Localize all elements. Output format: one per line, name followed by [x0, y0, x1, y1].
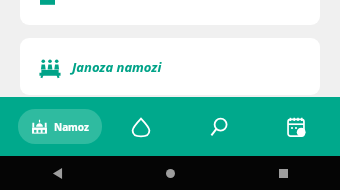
button[interactable]: Qidirish [180, 97, 257, 156]
button[interactable]: Back [0, 156, 114, 190]
button[interactable]: Taqvim [257, 97, 334, 156]
button[interactable]: Tahorat [102, 97, 180, 156]
staticText: Namoz [54, 120, 89, 134]
button[interactable] [20, 0, 320, 25]
button[interactable]: Janoza namozi [20, 38, 320, 95]
staticText: Janoza namozi [72, 58, 162, 76]
button[interactable]: Namoz [18, 109, 102, 144]
button[interactable]: Home [114, 156, 227, 190]
button[interactable]: Recents [227, 156, 340, 190]
